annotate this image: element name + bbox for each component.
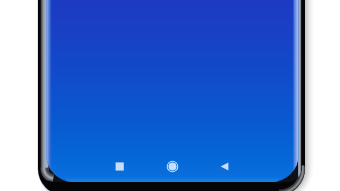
button[interactable]: Back (207, 152, 242, 181)
button[interactable]: Recent apps (102, 152, 137, 181)
button[interactable]: Home (155, 152, 190, 181)
